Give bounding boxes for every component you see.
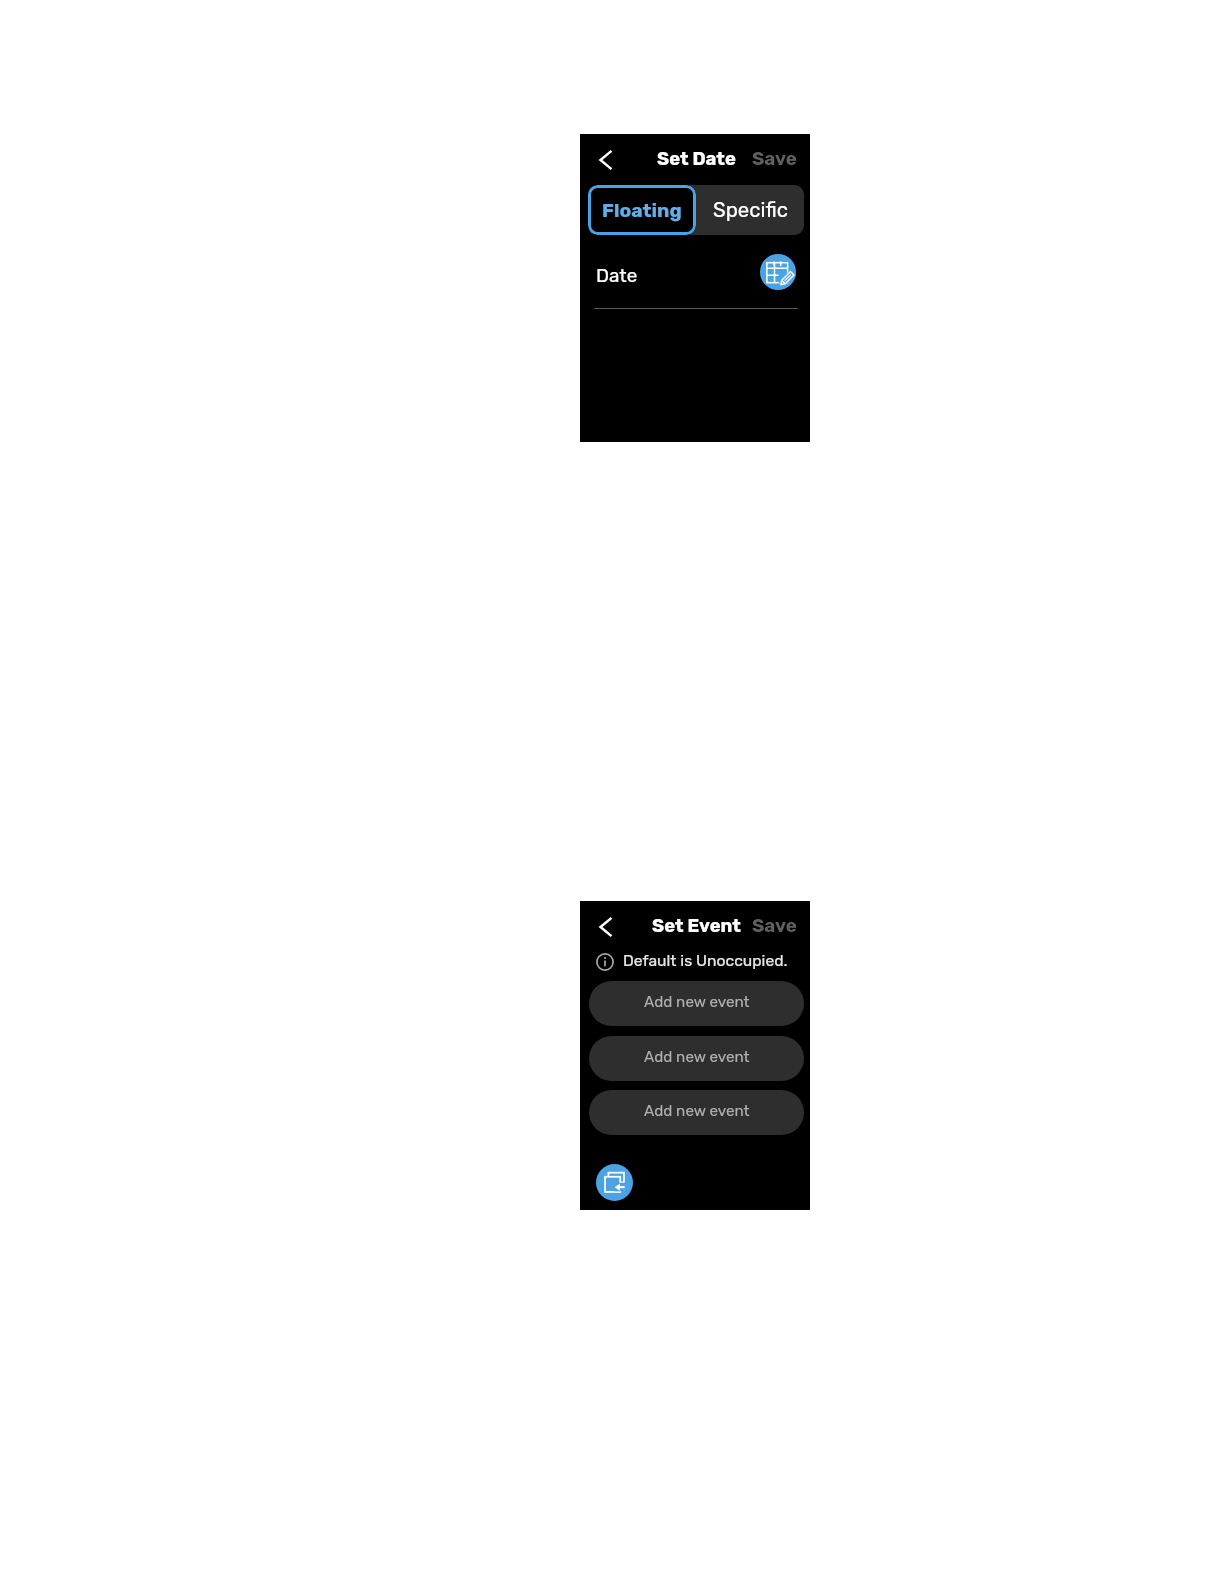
button[interactable]: Floating (588, 185, 696, 235)
staticText: Add new event (644, 1102, 750, 1120)
button[interactable]: Save (752, 915, 797, 937)
staticText: Set Event (652, 915, 741, 937)
button[interactable]: Specific (696, 185, 804, 235)
staticText: Add new event (644, 993, 750, 1011)
button[interactable]: Add new event (589, 1036, 804, 1081)
staticText: Set Date (657, 148, 736, 170)
staticText: Default is Unoccupied. (623, 951, 788, 970)
staticText: Floating (602, 199, 682, 222)
staticText: Add new event (644, 1048, 750, 1066)
button[interactable]: Add new event (589, 1090, 804, 1135)
staticText: Save (752, 915, 797, 937)
button[interactable]: Save (752, 148, 797, 170)
button[interactable]: Date (580, 244, 810, 300)
button[interactable]: Copy events (596, 1164, 633, 1201)
button[interactable]: Back (589, 143, 622, 176)
button[interactable]: Add new event (589, 981, 804, 1026)
button[interactable]: Back (589, 910, 622, 943)
staticText: Date (596, 264, 638, 286)
staticText: Save (752, 148, 797, 170)
button[interactable]: Edit date (760, 254, 796, 290)
button[interactable] (588, 185, 696, 235)
staticText: Specific (713, 198, 788, 222)
